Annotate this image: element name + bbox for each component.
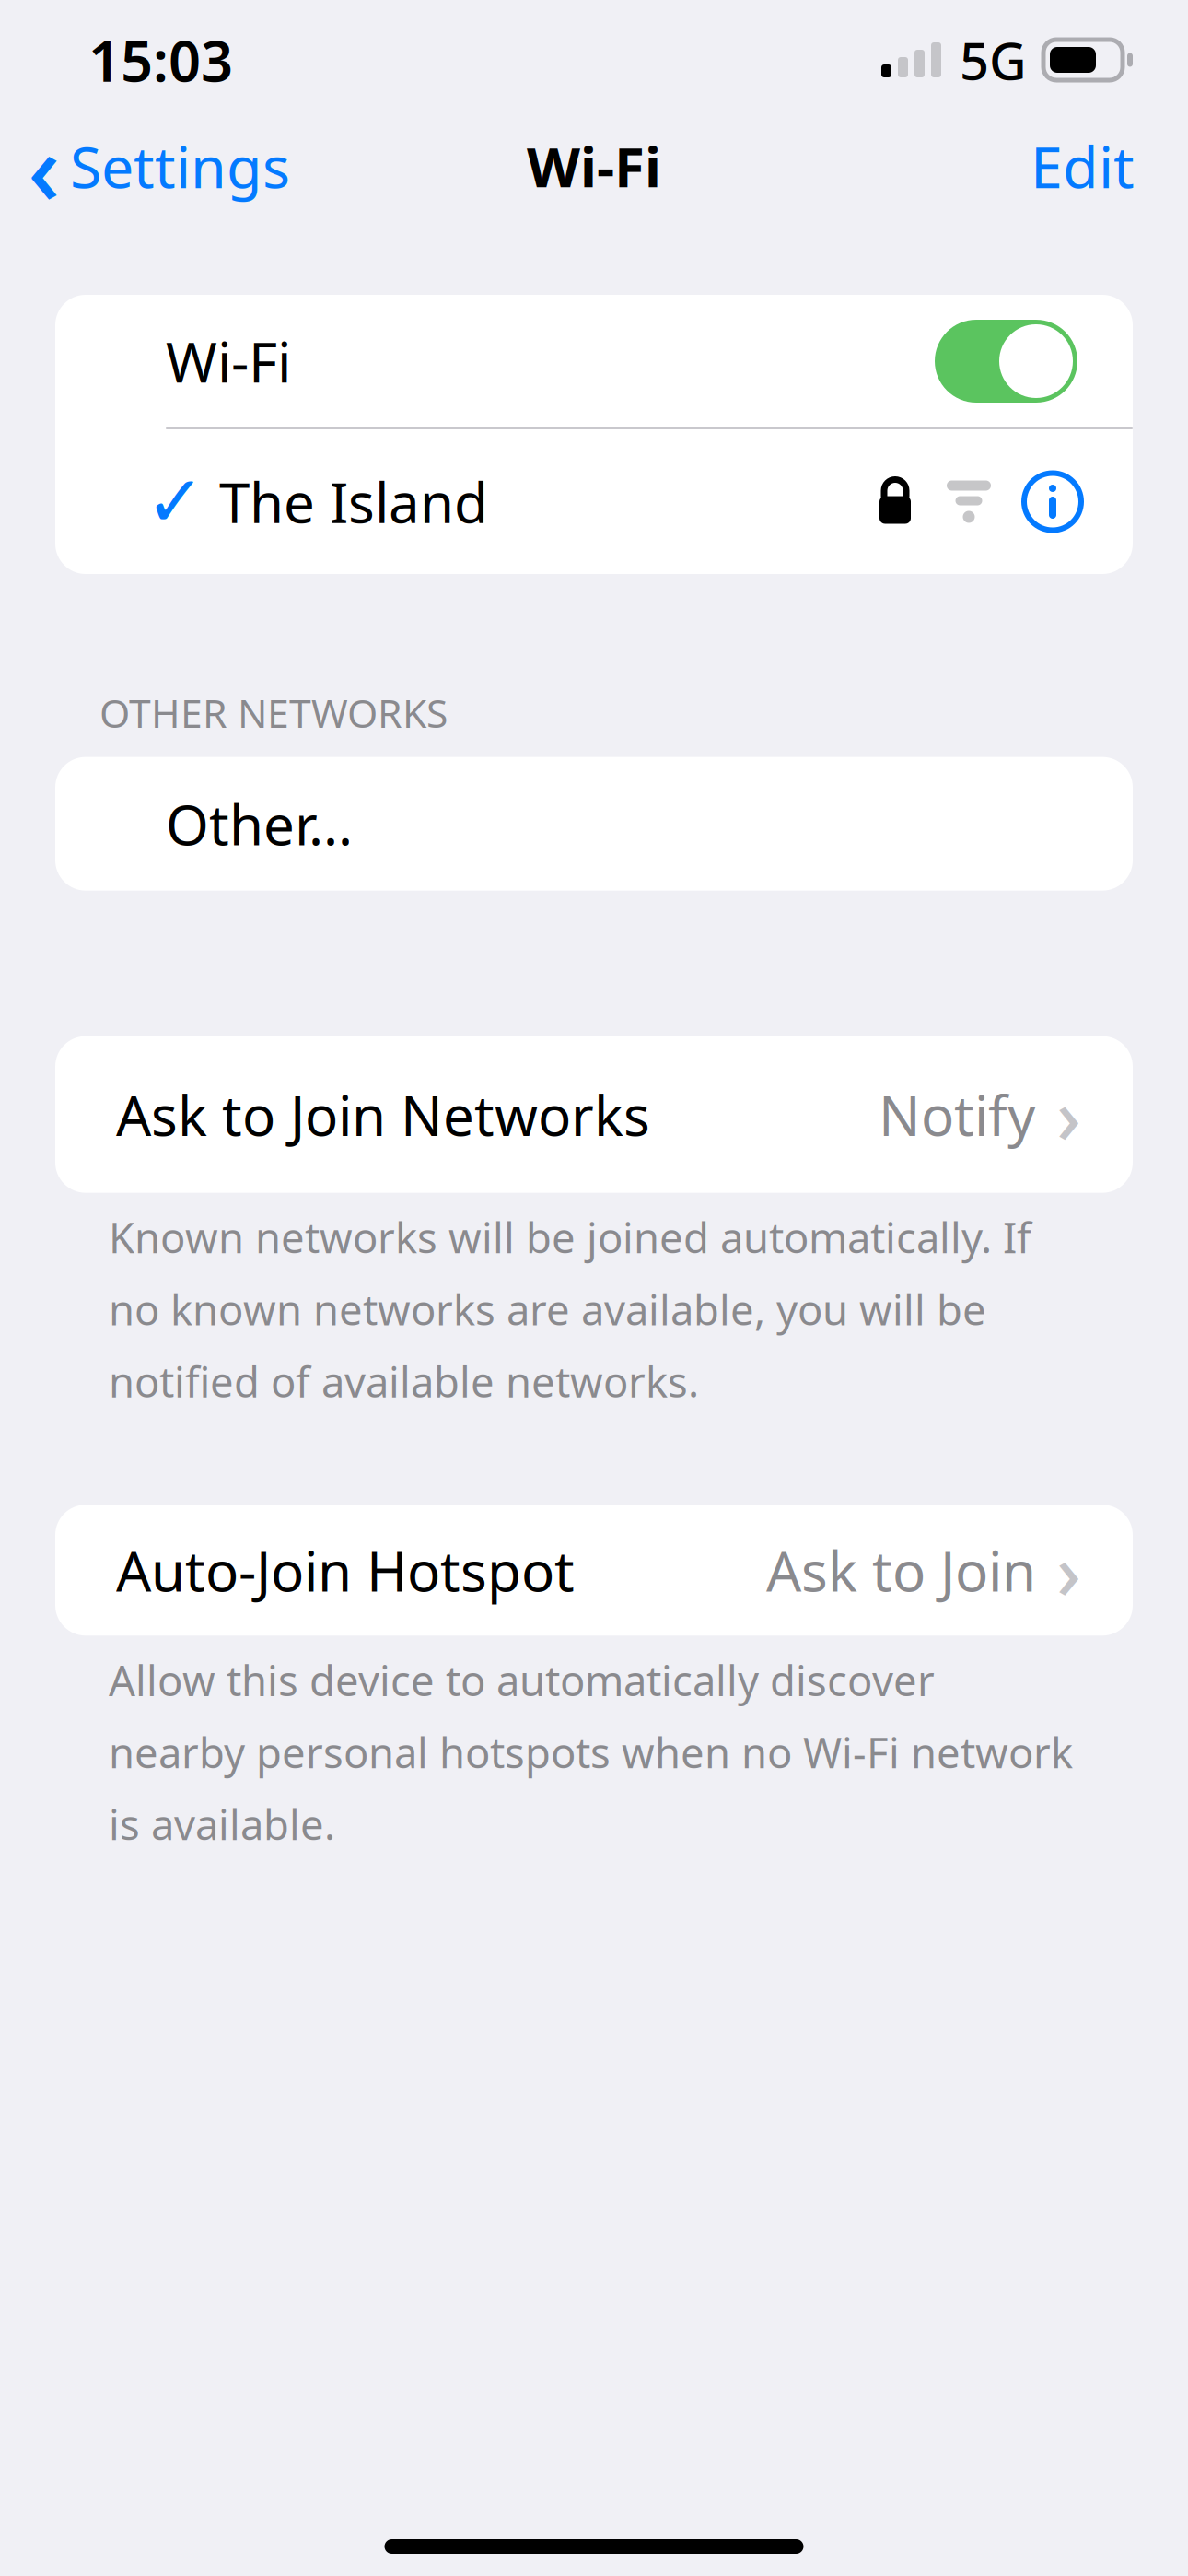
staticText: Auto-Join Hotspot: [116, 1533, 575, 1607]
staticText: no known networks are available, you wil…: [109, 1281, 986, 1337]
staticText: The Island: [219, 465, 488, 538]
button[interactable]: ✓: [55, 429, 1133, 574]
staticText: Other...: [166, 787, 353, 861]
staticText: ›: [1056, 1520, 1081, 1621]
staticText: ‹: [28, 99, 61, 233]
button[interactable]: Ask to Join Networks: [55, 1036, 1133, 1193]
staticText: is available.: [109, 1796, 335, 1852]
staticText: Wi-Fi: [527, 129, 661, 203]
staticText: Known networks will be joined automatica…: [109, 1209, 1031, 1265]
button[interactable]: Network information: [1024, 473, 1081, 530]
button[interactable]: Auto-Join Hotspot: [55, 1505, 1133, 1636]
staticText: ✓: [146, 461, 205, 542]
button[interactable]: Wi-Fi on: [935, 320, 1077, 403]
button[interactable]: Edit: [984, 116, 1188, 215]
staticText: Notify: [879, 1078, 1036, 1151]
button[interactable]: Other...: [55, 757, 1133, 891]
staticText: nearby personal hotspots when no Wi-Fi n…: [109, 1724, 1073, 1780]
staticText: OTHER NETWORKS: [99, 686, 448, 739]
staticText: Settings: [70, 128, 290, 204]
staticText: Ask to Join Networks: [116, 1078, 650, 1151]
staticText: Ask to Join: [766, 1533, 1036, 1607]
staticText: 5G: [960, 26, 1027, 94]
staticText: notified of available networks.: [109, 1354, 699, 1409]
staticText: Edit: [1031, 128, 1135, 204]
staticText: Wi-Fi: [166, 324, 291, 398]
staticText: Allow this device to automatically disco…: [109, 1652, 935, 1708]
button[interactable]: ‹: [0, 88, 290, 244]
staticText: ›: [1056, 1064, 1081, 1165]
staticText: 15:03: [88, 22, 233, 97]
